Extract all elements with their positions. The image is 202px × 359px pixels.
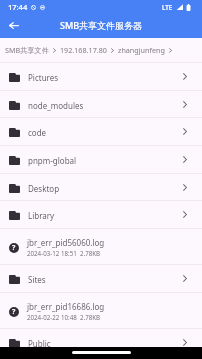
- button[interactable]: Back: [0, 14, 28, 38]
- button[interactable]: Pictures: [0, 63, 202, 90]
- staticText: ?: [12, 307, 16, 317]
- staticText: jbr_err_pid56060.log: [27, 237, 105, 248]
- button[interactable]: Sites: [0, 265, 202, 292]
- button[interactable]: SMB共享文件: [5, 45, 49, 55]
- button[interactable]: Public: [0, 329, 202, 356]
- staticText: zhangjunfeng: [118, 45, 165, 55]
- button[interactable]: code: [0, 118, 202, 145]
- staticText: Sites: [28, 274, 183, 285]
- staticText: Library: [28, 210, 183, 221]
- staticText: Public: [28, 338, 183, 349]
- button[interactable]: Library: [0, 201, 202, 228]
- staticText: 17:44: [8, 2, 28, 12]
- staticText: Pictures: [28, 72, 183, 83]
- button[interactable]: zhangjunfeng: [118, 45, 165, 55]
- staticText: Desktop: [28, 183, 183, 194]
- button[interactable]: ?: [0, 229, 202, 264]
- button[interactable]: Desktop: [0, 174, 202, 200]
- staticText: pnpm-global: [28, 155, 183, 166]
- button[interactable]: pnpm-global: [0, 146, 202, 173]
- staticText: 192.168.17.80: [60, 45, 107, 55]
- button[interactable]: ?: [0, 293, 202, 328]
- staticText: 2024-02-22 10:48 2.78KB: [27, 313, 101, 321]
- staticText: 2024-03-12 18:51 2.78KB: [27, 249, 101, 257]
- staticText: SMB共享文件服务器: [60, 19, 143, 31]
- button[interactable]: 192.168.17.80: [60, 45, 107, 55]
- button[interactable]: node_modules: [0, 91, 202, 117]
- staticText: jbr_err_pid16686.log: [27, 301, 105, 312]
- staticText: code: [28, 127, 183, 138]
- staticText: SMB共享文件: [5, 45, 49, 55]
- staticText: node_modules: [28, 100, 183, 111]
- staticText: ?: [12, 243, 16, 253]
- staticText: LTE: [162, 3, 173, 11]
